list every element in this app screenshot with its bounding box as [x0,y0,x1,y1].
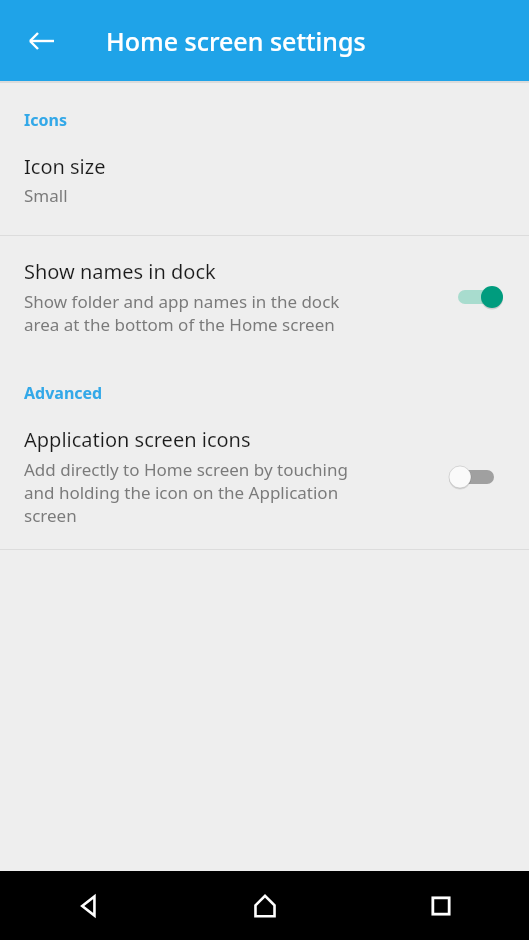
button[interactable]: Home [177,871,353,940]
staticText: area at the bottom of the Home screen [24,313,335,336]
staticText: screen [24,504,77,527]
button[interactable]: Off [441,453,513,501]
staticText: Show folder and app names in the dock [24,290,340,313]
staticText: Show names in dock [24,258,216,285]
staticText: Icons [24,109,67,131]
button[interactable]: Show names in dock [0,236,529,358]
button[interactable]: Application screen icons [0,426,529,527]
button[interactable]: Back [0,871,177,940]
staticText: and holding the icon on the Application [24,481,339,504]
button[interactable]: Icon size [0,153,529,207]
button[interactable]: Recent apps [353,871,529,940]
staticText: Advanced [24,382,103,404]
button[interactable]: On [441,273,513,321]
staticText: Home screen settings [106,24,366,58]
staticText: Icon size [24,153,106,180]
staticText: Application screen icons [24,426,251,453]
button[interactable]: Back [18,17,66,65]
staticText: Small [24,184,68,207]
staticText: Add directly to Home screen by touching [24,458,348,481]
